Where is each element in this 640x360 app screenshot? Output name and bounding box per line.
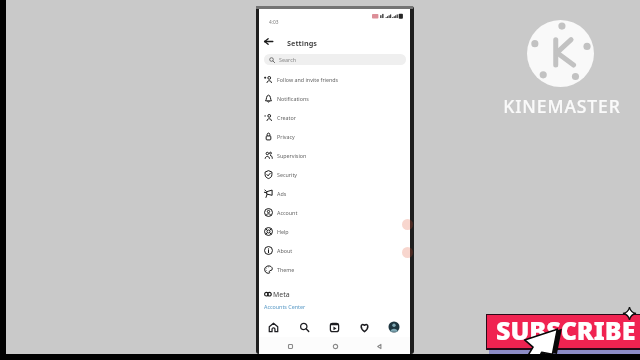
staticText: Ads (277, 190, 287, 197)
button[interactable] (487, 315, 640, 348)
button[interactable]: Back (357, 338, 401, 354)
staticText: Help (277, 228, 289, 235)
button[interactable]: Privacy (259, 127, 410, 146)
button[interactable]: Follow and invite friends (259, 70, 410, 89)
staticText: Meta (273, 290, 290, 299)
button[interactable]: Accounts Center (264, 303, 306, 310)
staticText: 4:03 (269, 19, 279, 26)
staticText: Creator (277, 114, 296, 121)
button[interactable]: Home (313, 338, 357, 354)
staticText: Notifications (277, 95, 309, 102)
button[interactable]: Search (264, 54, 406, 65)
staticText: KINEMASTER (497, 94, 627, 118)
button[interactable]: Ads (259, 184, 410, 203)
button[interactable]: Supervision (259, 146, 410, 165)
button[interactable]: About (259, 241, 410, 260)
button[interactable]: Creator (259, 108, 410, 127)
staticText: Theme (277, 266, 295, 273)
button[interactable]: Search (289, 322, 319, 332)
staticText: Supervision (277, 152, 307, 159)
button[interactable]: Reels (319, 322, 349, 332)
staticText: Follow and invite friends (277, 76, 339, 83)
button[interactable]: Theme (259, 260, 410, 279)
staticText: Search (279, 56, 297, 63)
staticText: Settings (287, 38, 317, 48)
button[interactable]: Profile (379, 322, 409, 332)
button[interactable]: Security (259, 165, 410, 184)
staticText: About (277, 247, 293, 254)
button[interactable]: Help (259, 222, 410, 241)
staticText: Security (277, 171, 298, 178)
staticText: Account (277, 209, 298, 216)
staticText: Privacy (277, 133, 295, 140)
button[interactable]: Recents (268, 338, 313, 354)
button[interactable]: Record (402, 219, 413, 230)
staticText: SUBSCRIBE (496, 313, 636, 347)
button[interactable]: Edit (402, 247, 413, 258)
button[interactable]: Account (259, 203, 410, 222)
button[interactable]: Likes (349, 322, 379, 332)
button[interactable]: Home (258, 322, 289, 332)
button[interactable]: Notifications (259, 89, 410, 108)
button[interactable]: Back (260, 31, 277, 52)
